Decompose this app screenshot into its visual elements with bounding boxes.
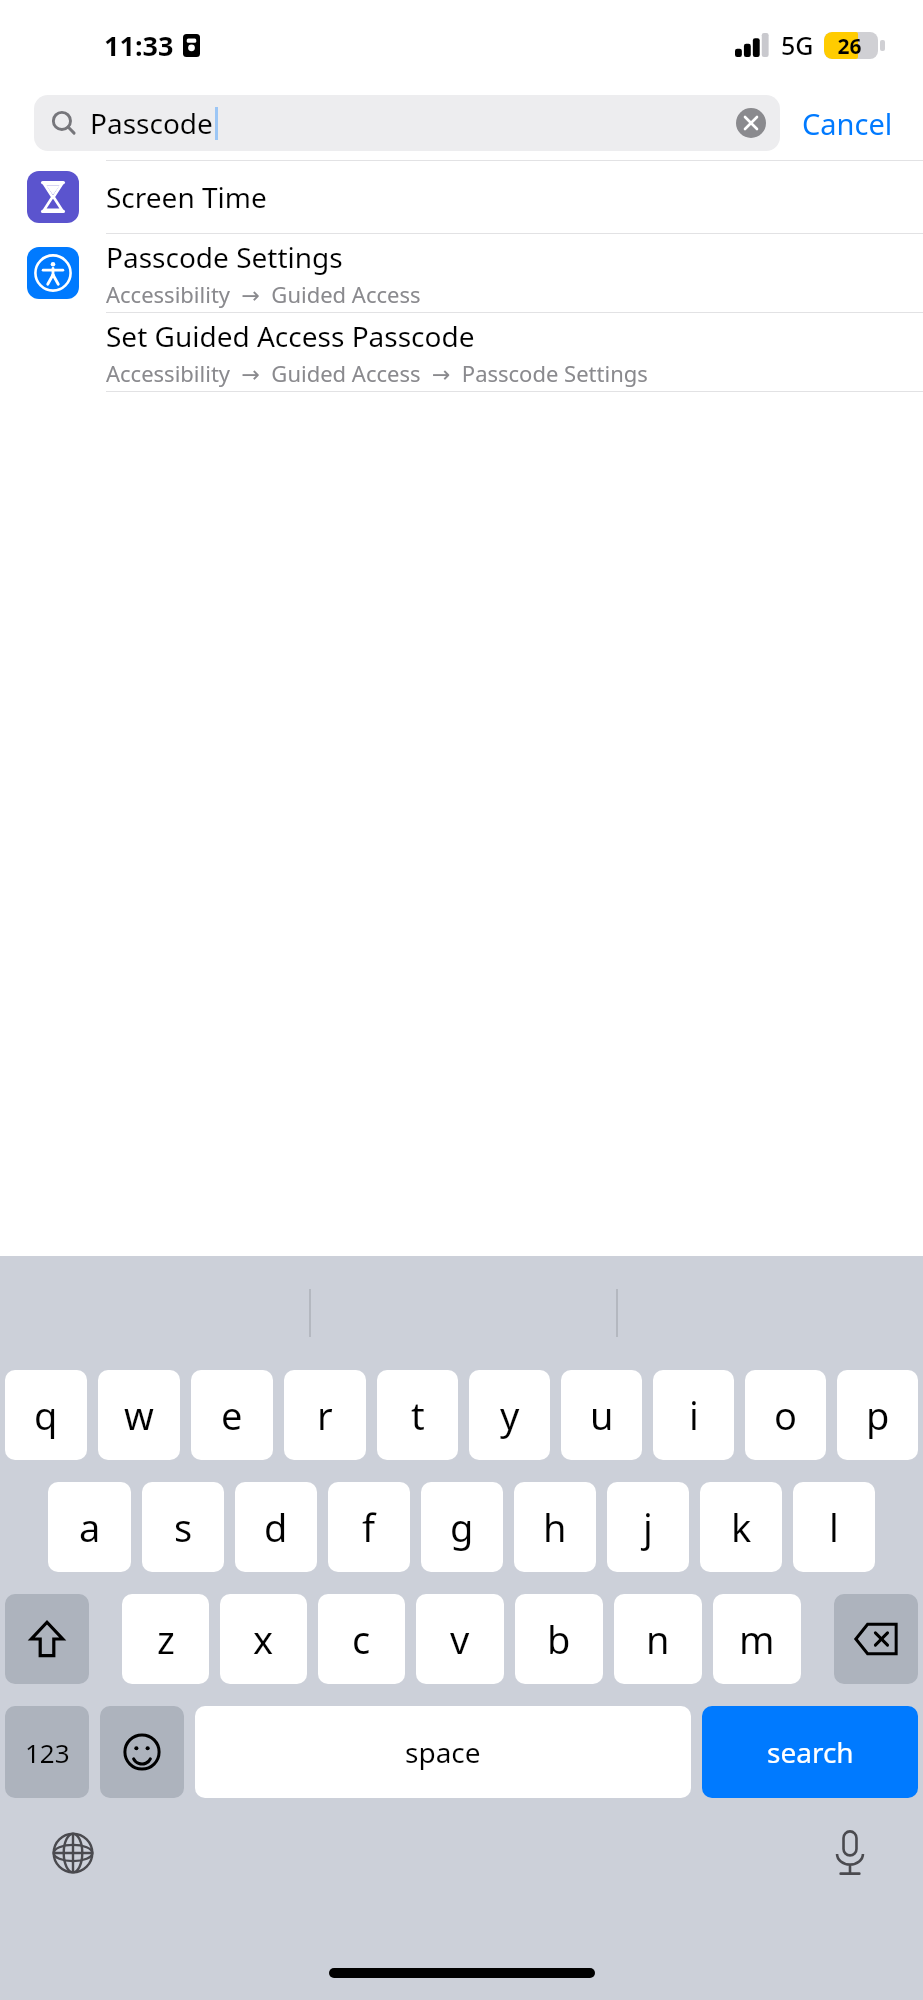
staticText: v xyxy=(450,1613,470,1665)
staticText: f xyxy=(362,1501,376,1553)
staticText: d xyxy=(264,1501,288,1553)
staticText: w xyxy=(124,1389,154,1441)
staticText: l xyxy=(829,1501,839,1553)
button[interactable]: Set Guided Access Passcode xyxy=(0,313,923,391)
staticText: Set Guided Access Passcode xyxy=(106,317,475,355)
staticText: i xyxy=(689,1389,699,1441)
button[interactable]: s xyxy=(142,1482,224,1572)
button[interactable]: l xyxy=(793,1482,875,1572)
button[interactable]: y xyxy=(469,1370,550,1460)
staticText: u xyxy=(590,1389,614,1441)
staticText: j xyxy=(643,1501,653,1553)
button[interactable]: h xyxy=(514,1482,596,1572)
staticText: t xyxy=(411,1389,425,1441)
button[interactable]: 123 xyxy=(5,1706,89,1798)
staticText: 5G xyxy=(781,28,814,62)
button[interactable]: k xyxy=(700,1482,782,1572)
staticText: y xyxy=(500,1389,520,1441)
staticText: k xyxy=(731,1501,752,1553)
staticText: Passcode Settings xyxy=(106,238,343,276)
button[interactable]: z xyxy=(122,1594,209,1684)
button[interactable]: n xyxy=(614,1594,702,1684)
button[interactable]: Shift xyxy=(5,1594,89,1684)
staticText: x xyxy=(253,1613,274,1665)
staticText: Screen Time xyxy=(106,178,267,216)
button[interactable]: g xyxy=(421,1482,503,1572)
button[interactable]: b xyxy=(515,1594,603,1684)
staticText: g xyxy=(450,1501,474,1553)
staticText: a xyxy=(79,1501,101,1553)
button[interactable]: f xyxy=(328,1482,410,1572)
button[interactable]: a xyxy=(48,1482,131,1572)
button[interactable]: Cancel xyxy=(798,96,897,151)
staticText: Cancel xyxy=(802,104,893,143)
button[interactable]: u xyxy=(561,1370,642,1460)
staticText: o xyxy=(774,1389,797,1441)
button[interactable]: Emoji xyxy=(100,1706,184,1798)
button[interactable]: Screen Time xyxy=(0,161,923,233)
staticText: n xyxy=(646,1613,670,1665)
staticText: Accessibility → Guided Access xyxy=(106,279,421,309)
staticText: z xyxy=(157,1613,175,1665)
staticText: Accessibility → Guided Access → Passcode… xyxy=(106,358,648,388)
button[interactable]: Dictation xyxy=(823,1826,877,1880)
staticText: q xyxy=(34,1389,58,1441)
staticText: 11:33 xyxy=(104,27,174,64)
staticText: e xyxy=(221,1389,243,1441)
staticText: r xyxy=(317,1389,333,1441)
button[interactable]: r xyxy=(284,1370,366,1460)
button[interactable]: o xyxy=(745,1370,826,1460)
staticText: 26 xyxy=(824,32,875,59)
button[interactable]: p xyxy=(837,1370,918,1460)
staticText: search xyxy=(767,1733,854,1771)
button[interactable]: q xyxy=(5,1370,87,1460)
staticText: s xyxy=(174,1501,193,1553)
button[interactable]: m xyxy=(713,1594,801,1684)
staticText: m xyxy=(739,1613,775,1665)
staticText: b xyxy=(547,1613,571,1665)
button[interactable]: j xyxy=(607,1482,689,1572)
button[interactable]: Clear text xyxy=(736,108,766,138)
staticText: c xyxy=(352,1613,371,1665)
staticText: 123 xyxy=(25,1735,70,1770)
button[interactable]: Passcode xyxy=(34,95,780,151)
staticText: Passcode xyxy=(90,104,213,142)
button[interactable]: d xyxy=(235,1482,317,1572)
button[interactable]: i xyxy=(653,1370,734,1460)
button[interactable]: w xyxy=(98,1370,180,1460)
button[interactable]: Backspace xyxy=(834,1594,918,1684)
button[interactable]: space xyxy=(195,1706,691,1798)
button[interactable]: Next keyboard xyxy=(46,1826,100,1880)
button[interactable]: Passcode Settings xyxy=(0,234,923,312)
staticText: p xyxy=(866,1389,890,1441)
button[interactable]: x xyxy=(220,1594,307,1684)
button[interactable]: t xyxy=(377,1370,458,1460)
button[interactable]: search xyxy=(702,1706,918,1798)
staticText: space xyxy=(405,1733,481,1771)
button[interactable]: e xyxy=(191,1370,273,1460)
button[interactable]: c xyxy=(318,1594,405,1684)
button[interactable]: v xyxy=(416,1594,504,1684)
staticText: h xyxy=(543,1501,567,1553)
